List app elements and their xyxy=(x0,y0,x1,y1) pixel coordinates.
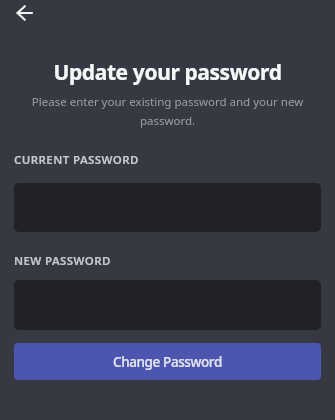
staticText: NEW PASSWORD xyxy=(14,253,111,269)
staticText: Change Password xyxy=(113,353,222,371)
button[interactable]: Change Password xyxy=(14,343,321,380)
staticText: Update your password xyxy=(0,58,335,87)
staticText: Please enter your existing password and … xyxy=(0,94,335,128)
staticText: CURRENT PASSWORD xyxy=(14,152,139,168)
button[interactable] xyxy=(10,0,42,32)
